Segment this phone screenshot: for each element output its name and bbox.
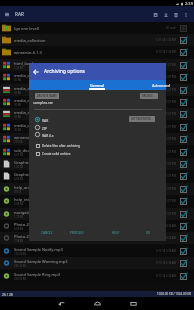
button[interactable]: Select file xyxy=(179,123,187,131)
button[interactable]: RAR 4.x xyxy=(35,131,54,138)
staticText: 5/11/14 1:07 PM xyxy=(156,125,176,129)
button[interactable]: BROWSE... xyxy=(140,93,158,99)
button[interactable]: Select file xyxy=(179,98,187,106)
button[interactable]: Select file xyxy=(179,272,187,280)
staticText: BROWSE... xyxy=(142,94,156,98)
button[interactable]: help_android.apk xyxy=(0,183,194,195)
staticText: 5/11/14 1:30 PM xyxy=(156,50,176,54)
staticText: help_android.apk xyxy=(14,185,47,190)
button[interactable]: Select file xyxy=(179,135,187,143)
button[interactable]: sub_dir.rar xyxy=(0,146,194,158)
button[interactable]: Sound Sample Notify.mp3 xyxy=(0,245,194,257)
button[interactable]: Select file xyxy=(179,110,187,118)
staticText: General xyxy=(90,83,105,88)
staticText: PROFILES xyxy=(70,231,84,235)
staticText: 30 KB xyxy=(14,103,21,107)
button[interactable]: Open navigation drawer xyxy=(1,6,13,22)
staticText: 7.98 KB xyxy=(14,239,24,243)
button[interactable]: navigation.apk xyxy=(0,208,194,220)
button[interactable]: Graphic2.png xyxy=(0,170,194,182)
staticText: CANCEL xyxy=(41,231,53,235)
staticText: Photo-2014-06-10-City.jpg xyxy=(14,222,63,227)
button[interactable]: General xyxy=(65,80,129,90)
staticText: Sound Sample Ring.mp3 xyxy=(14,272,61,277)
button[interactable]: Select file xyxy=(179,197,187,205)
staticText: Photo-2014-06-11-Sunset.jpg xyxy=(14,234,69,239)
staticText: 330.00 KB xyxy=(14,277,27,281)
staticText: Graphic1.png xyxy=(14,160,40,165)
button[interactable]: media_clip3.rar xyxy=(0,96,194,108)
button[interactable]: Select file xyxy=(179,210,187,218)
button[interactable]: (go one level) xyxy=(0,22,194,34)
staticText: 5/11/14 5:30 AM xyxy=(156,274,176,278)
staticText: 210 KB xyxy=(14,140,23,144)
button[interactable]: Select file xyxy=(179,86,187,94)
button[interactable]: Delete files after archiving xyxy=(36,143,80,149)
button[interactable]: Back xyxy=(51,297,71,310)
button[interactable]: Select file xyxy=(179,160,187,168)
staticText: 1.00 KB xyxy=(14,165,24,169)
button[interactable]: Select file xyxy=(179,148,187,156)
button[interactable]: Back xyxy=(29,63,43,80)
button[interactable]: PROFILES xyxy=(69,229,85,237)
button[interactable]: ARCHIVE NAME xyxy=(35,93,59,99)
button[interactable]: Extract xyxy=(161,7,171,22)
button[interactable]: winrarsio.rar xyxy=(0,133,194,145)
staticText: media_collection xyxy=(14,38,46,43)
staticText: SD card xyxy=(166,26,176,30)
button[interactable]: Archive xyxy=(151,7,161,22)
staticText: media_clip3.rar xyxy=(14,98,43,103)
staticText: 30 KB xyxy=(14,78,21,82)
button[interactable]: media_clip2.rar xyxy=(0,84,194,96)
button[interactable]: Sound Sample Warning.mp3 xyxy=(0,257,194,269)
button[interactable]: Select file xyxy=(179,61,187,69)
staticText: 5/11/14 1:07 PM xyxy=(156,100,176,104)
button[interactable]: Delete xyxy=(171,7,181,22)
staticText: HELP xyxy=(112,231,120,235)
staticText: 5/11/14 1:07 PM xyxy=(156,199,176,203)
button[interactable]: Select file xyxy=(179,172,187,180)
button[interactable]: media_clip4.rar xyxy=(0,108,194,120)
button[interactable]: Select file xyxy=(179,48,187,56)
staticText: 30 KB xyxy=(14,91,21,95)
button[interactable]: Select file xyxy=(179,185,187,193)
button[interactable]: RAR xyxy=(35,116,49,123)
button[interactable]: Graphic1.png xyxy=(0,158,194,170)
button[interactable]: Home xyxy=(87,297,107,310)
button[interactable]: Select file xyxy=(179,36,187,44)
staticText: 5/11/14 1:07 PM xyxy=(156,212,176,216)
button[interactable]: Select file xyxy=(179,234,187,242)
staticText: winrarsio-6.1.3 xyxy=(14,50,42,55)
button[interactable]: SET PASSWORD... xyxy=(129,116,155,122)
button[interactable]: Select file xyxy=(179,247,187,255)
button[interactable]: Photo-2014-06-11-Sunset.jpg xyxy=(0,232,194,244)
button[interactable]: html_book.rar xyxy=(0,59,194,71)
button[interactable]: help_intro.apk xyxy=(0,195,194,207)
button[interactable]: CANCEL xyxy=(40,229,54,237)
button[interactable]: Select file xyxy=(179,222,187,230)
button[interactable]: HELP xyxy=(111,229,121,237)
button[interactable]: Select file xyxy=(179,259,187,267)
staticText: 5/11/14 1:07 PM xyxy=(156,162,176,166)
button[interactable]: More options xyxy=(181,7,191,22)
button[interactable]: OK xyxy=(145,229,152,237)
staticText: 30 KB xyxy=(14,128,21,132)
button[interactable]: media_collection xyxy=(0,34,194,46)
button[interactable]: media_clip5.rar xyxy=(0,121,194,133)
button[interactable]: Advanced xyxy=(129,80,193,90)
button[interactable]: Select file xyxy=(179,73,187,81)
staticText: 5/11/14 1:07 PM xyxy=(156,75,176,79)
button[interactable]: Recent apps xyxy=(123,297,143,310)
staticText: media_clip2.rar xyxy=(14,86,43,91)
button[interactable]: Select file xyxy=(179,24,187,32)
button[interactable]: winrarsio-6.1.3 xyxy=(0,46,194,58)
button[interactable]: Photo-2014-06-10-City.jpg xyxy=(0,220,194,232)
staticText: RAR xyxy=(15,11,24,17)
staticText: 5/11/14 1:07 PM xyxy=(156,88,176,92)
button[interactable]: Create solid archive xyxy=(36,151,71,157)
button[interactable]: Sound Sample Ring.mp3 xyxy=(0,270,194,282)
button[interactable]: ZIP xyxy=(35,124,47,131)
staticText: (go one level) xyxy=(14,26,40,31)
button[interactable]: media_clip1.rar xyxy=(0,71,194,83)
staticText: samplex.rar xyxy=(33,100,53,105)
